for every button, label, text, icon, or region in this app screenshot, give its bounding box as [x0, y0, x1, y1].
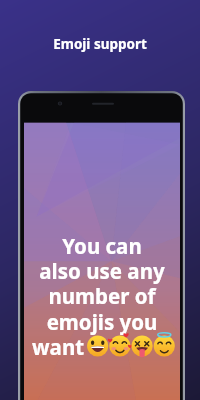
button[interactable]: Emoji support preview: [0, 0, 200, 400]
